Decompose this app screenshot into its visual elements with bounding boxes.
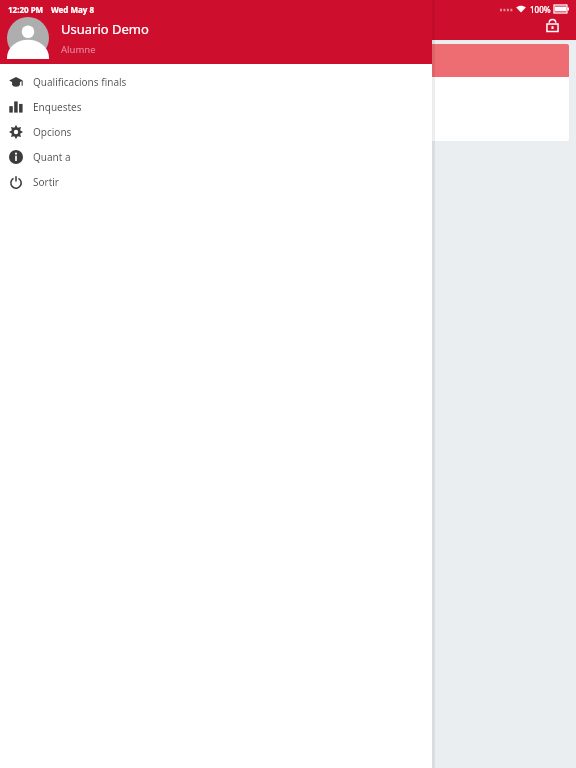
button[interactable]: Quant a (0, 144, 432, 169)
staticText: Alumne (61, 43, 96, 56)
staticText: Quant a (33, 150, 71, 164)
staticText: Qualificacions finals (33, 75, 127, 89)
button[interactable]: MÀSTER UNIVERSITARI EN ESTUDIS AVANÇATS … (7, 44, 569, 141)
staticText: Curs 2023/24 (16, 105, 69, 117)
staticText: Usuario Demo (61, 20, 149, 38)
staticText: Opcions (33, 125, 72, 139)
button[interactable]: Enquestes (0, 94, 432, 119)
staticText: Sortir (33, 175, 59, 189)
staticText: 100% (530, 4, 551, 15)
staticText: Wed May 8 (51, 4, 95, 15)
button[interactable]: Opcions (0, 119, 432, 144)
button[interactable]: Sortir (0, 169, 432, 194)
button[interactable]: Qualificacions finals (0, 69, 432, 94)
button[interactable]: Lock (538, 11, 566, 39)
staticText: Enquestes (33, 100, 82, 114)
staticText: Facultat de Biologia (16, 120, 95, 132)
staticText: 12:20 PM (8, 4, 44, 15)
staticText: MÀSTER UNIVERSITARI EN ESTUDIS AVANÇATS … (16, 86, 380, 100)
